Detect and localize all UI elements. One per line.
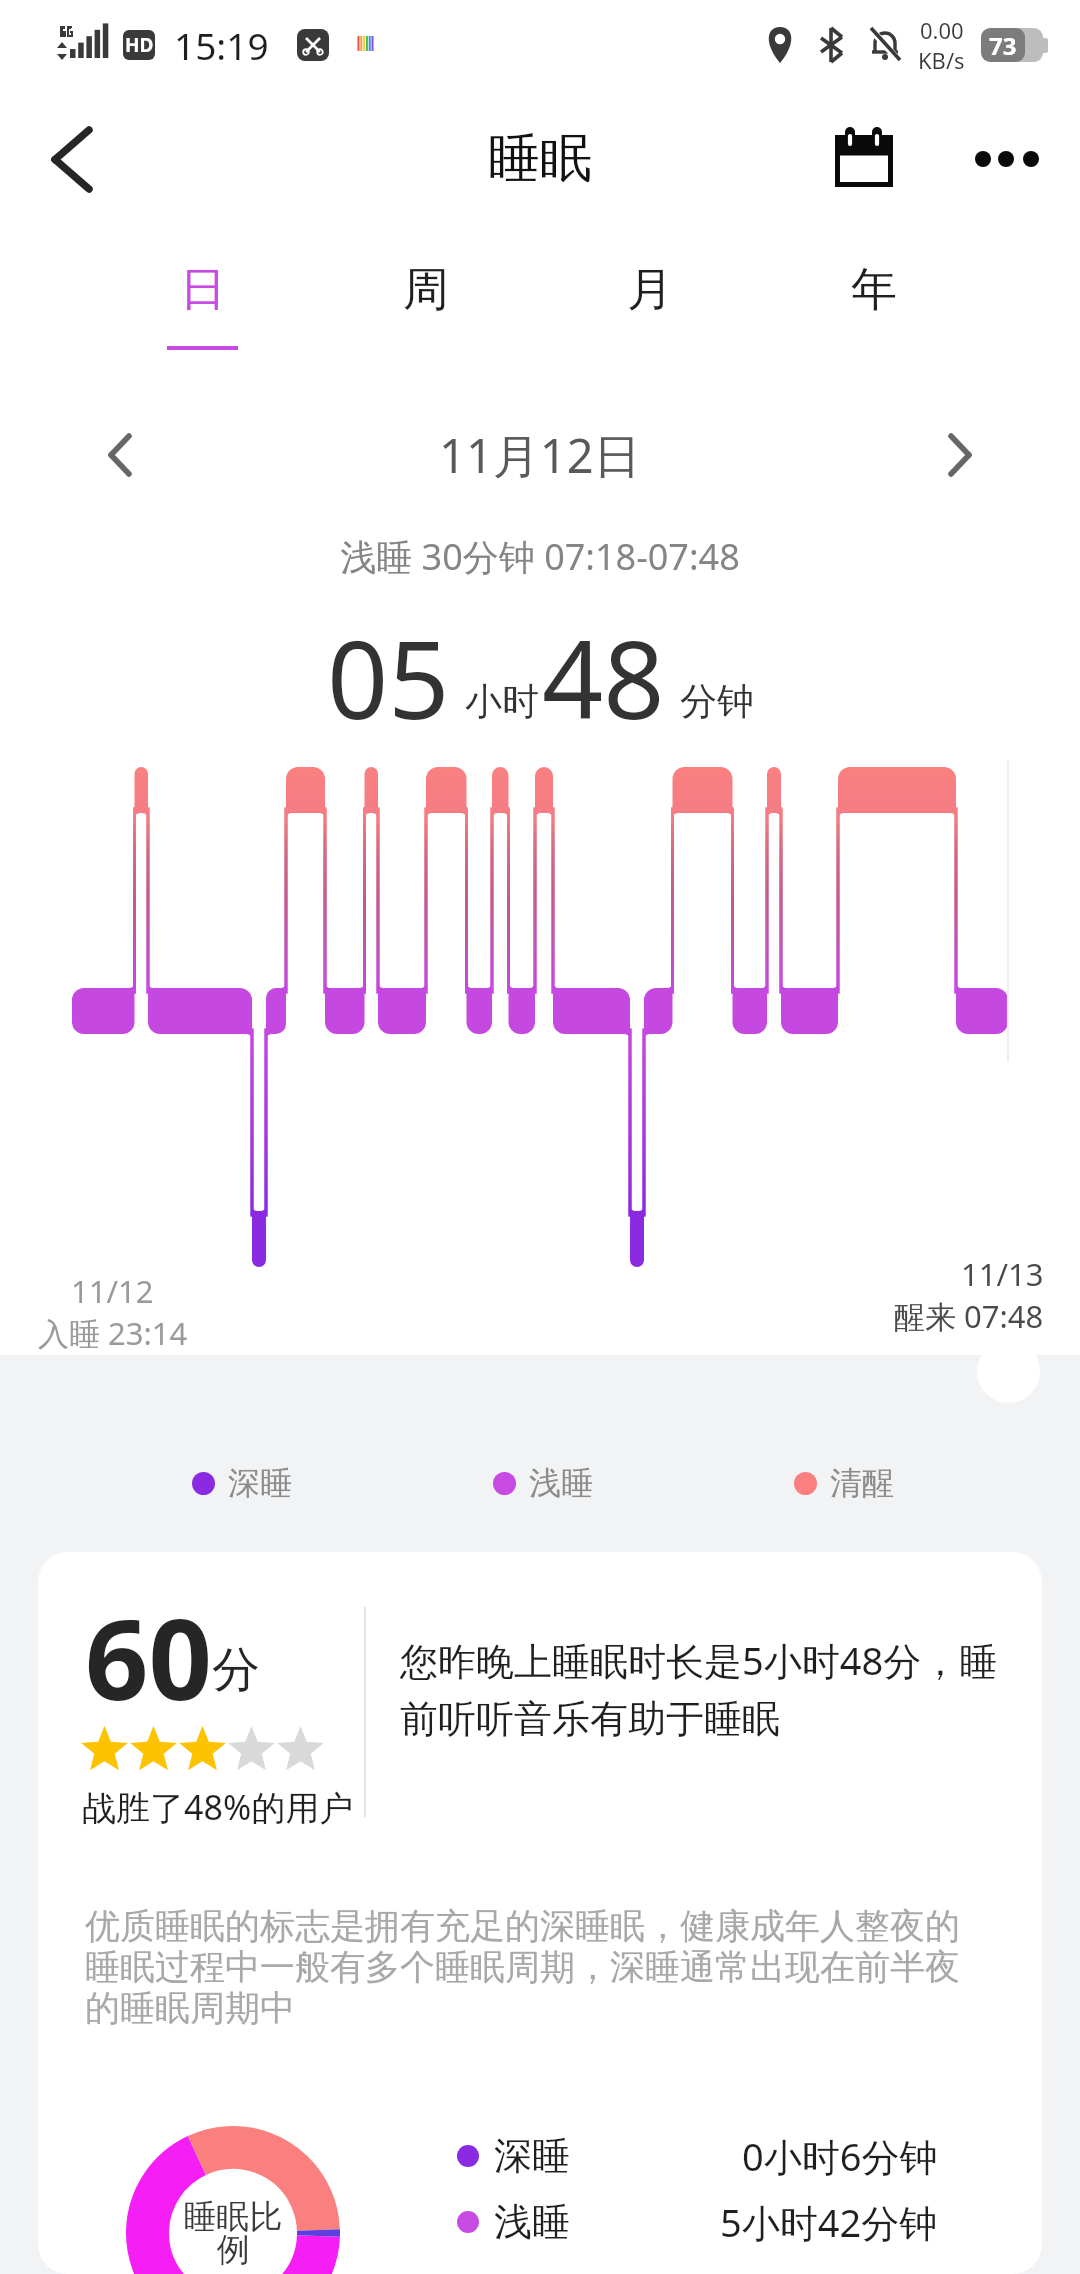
staticText: 60 xyxy=(85,1581,212,1732)
staticText: 您昨晚上睡眠时长是5小时48分，睡前听听音乐有助于睡眠 xyxy=(400,1634,1000,1744)
staticText: 11/12 xyxy=(71,1270,154,1312)
button[interactable]: Calendar xyxy=(794,96,934,222)
staticText: 深睡 xyxy=(228,1463,292,1503)
button[interactable]: 清醒 xyxy=(794,1450,894,1516)
staticText: 战胜了48%的用户 xyxy=(82,1784,354,1830)
staticText: 0.00 xyxy=(920,15,964,45)
staticText: HD xyxy=(125,32,154,58)
staticText: 优质睡眠的标志是拥有充足的深睡眠，健康成年人整夜的睡眠过程中一般有多个睡眠周期，… xyxy=(85,1904,965,2030)
button[interactable]: 日 xyxy=(107,261,297,391)
staticText: 浅睡 30分钟 07:18-07:48 xyxy=(0,532,1080,581)
staticText: 分钟 xyxy=(680,678,754,725)
button[interactable]: 年 xyxy=(779,261,969,391)
button[interactable]: Next day xyxy=(918,413,1002,497)
staticText: 浅睡 xyxy=(494,2198,570,2246)
staticText: 11/13 xyxy=(961,1253,1044,1295)
button[interactable]: Back xyxy=(17,104,127,214)
staticText: 醒来 07:48 xyxy=(894,1295,1044,1337)
staticText: 周 xyxy=(403,261,449,319)
staticText: KB/s xyxy=(918,45,965,75)
staticText: 分 xyxy=(212,1640,260,1700)
staticText: 清醒 xyxy=(830,1463,894,1503)
button[interactable]: 60 xyxy=(38,1552,1042,2274)
staticText: 睡眠比例 xyxy=(181,2196,285,2270)
button[interactable]: More options xyxy=(948,100,1066,218)
staticText: 15:19 xyxy=(174,20,269,70)
button[interactable]: 深睡 xyxy=(192,1450,292,1516)
staticText: 05 xyxy=(327,605,450,751)
staticText: 48 xyxy=(542,605,665,751)
staticText: 日 xyxy=(180,261,226,319)
staticText: 睡眠 xyxy=(488,126,592,192)
staticText: 0小时6分钟 xyxy=(742,2130,938,2182)
button[interactable]: 浅睡 xyxy=(493,1450,593,1516)
button[interactable]: 周 xyxy=(331,261,521,391)
staticText: 小时 xyxy=(465,678,539,725)
staticText: 月 xyxy=(627,261,673,319)
staticText: 73 xyxy=(989,29,1017,62)
staticText: 5小时42分钟 xyxy=(720,2196,938,2248)
staticText: 入睡 23:14 xyxy=(38,1312,188,1354)
staticText: 浅睡 xyxy=(529,1463,593,1503)
staticText: 深睡 xyxy=(494,2132,570,2180)
staticText: 年 xyxy=(851,261,897,319)
button[interactable]: Scroll to top xyxy=(977,1340,1040,1403)
button[interactable]: Previous day xyxy=(78,413,162,497)
button[interactable]: 月 xyxy=(555,261,745,391)
staticText: 11月12日 xyxy=(439,423,641,487)
